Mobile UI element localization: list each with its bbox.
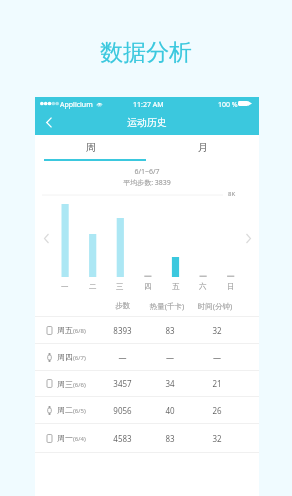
staticText: 4583 [102,433,143,444]
staticText: 周五 [57,325,73,335]
staticText: 32 [193,433,241,444]
staticText: 平均步数: 3839 [35,178,259,188]
staticText: 步数 [102,301,143,310]
staticText: 9056 [102,405,143,416]
staticText: 26 [193,405,241,416]
staticText: 时间(分钟) [191,301,239,311]
staticText: 三 [116,282,124,291]
staticText: 周一 [57,433,73,443]
staticText: — [146,352,194,363]
button[interactable]: Back [38,110,60,135]
staticText: 月 [198,141,208,154]
button[interactable]: 周二 [35,397,259,423]
button[interactable]: Previous week [39,231,53,245]
button[interactable]: Next week [241,231,255,245]
staticText: (6/6) [73,381,86,389]
staticText: 83 [146,433,194,444]
staticText: 周 [86,141,96,154]
button[interactable]: 周五 [35,317,259,343]
staticText: 六 [199,282,207,291]
staticText: 32 [193,325,241,336]
staticText: 周三 [57,379,73,389]
staticText: 83 [146,325,194,336]
staticText: 日 [227,282,235,291]
staticText: (6/8) [73,327,86,335]
staticText: 40 [146,405,194,416]
staticText: (6/7) [73,354,86,362]
button[interactable]: 周三 [35,371,259,396]
button[interactable]: 月 [147,135,259,159]
staticText: 周二 [57,405,73,415]
staticText: 数据分析 [100,38,192,67]
staticText: 热量(千卡) [143,301,191,311]
staticText: — [193,352,241,363]
staticText: 二 [89,282,97,291]
staticText: 周四 [57,352,73,362]
button[interactable]: 周四 [35,344,259,370]
staticText: 8393 [102,325,143,336]
staticText: 3457 [102,378,143,389]
staticText: 五 [172,282,180,291]
button[interactable]: 周 [35,135,147,159]
staticText: 一 [61,282,69,291]
staticText: 34 [146,378,194,389]
staticText: (6/4) [73,435,86,443]
staticText: 21 [193,378,241,389]
staticText: 11:27 AM [133,100,164,110]
button[interactable]: 周一 [35,424,259,452]
staticText: — [102,352,143,363]
staticText: (6/5) [73,407,86,415]
staticText: 100 % [218,100,238,110]
staticText: 四 [144,282,152,291]
staticText: Applicium [60,100,93,110]
staticText: 8K [228,190,236,198]
staticText: 运动历史 [127,116,167,129]
staticText: 6/1~6/7 [35,167,259,177]
